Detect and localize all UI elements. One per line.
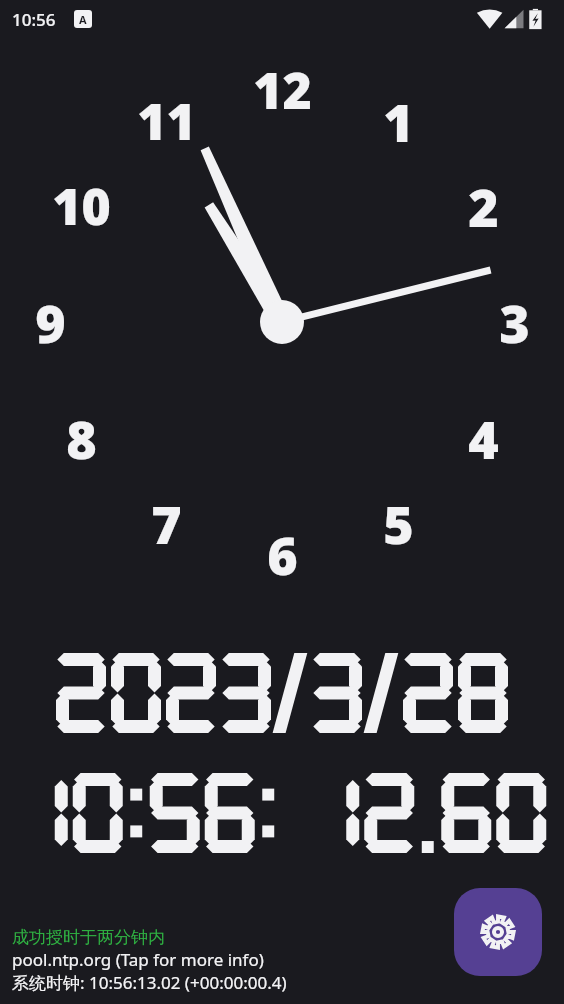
staticText: A: [79, 12, 87, 27]
button[interactable]: 成功授时于两分钟内: [12, 927, 287, 994]
staticText: pool.ntp.org (Tap for more info): [12, 948, 264, 971]
staticText: 4: [468, 403, 499, 474]
button[interactable]: Settings: [454, 888, 542, 976]
staticText: 2: [468, 171, 499, 242]
staticText: 9: [35, 287, 66, 358]
staticText: 12: [253, 56, 312, 124]
staticText: 3: [499, 287, 530, 358]
staticText: 5: [383, 488, 414, 559]
staticText: 6: [267, 519, 298, 590]
staticText: 10: [52, 172, 111, 240]
staticText: 成功授时于两分钟内: [12, 927, 165, 948]
staticText: 11: [137, 87, 196, 155]
staticText: 1: [383, 86, 414, 157]
staticText: 系统时钟: 10:56:13.02 (+00:00:00.4): [12, 971, 287, 994]
staticText: 7: [151, 488, 182, 559]
staticText: 8: [66, 403, 97, 474]
staticText: 10:56: [12, 8, 56, 31]
